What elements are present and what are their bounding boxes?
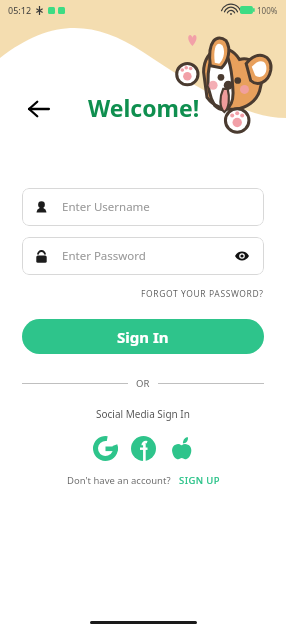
- button[interactable]: Back: [20, 90, 58, 128]
- staticText: 100%: [257, 5, 278, 16]
- button[interactable]: Sign In: [22, 319, 264, 354]
- staticText: FORGOT YOUR PASSWORD?: [141, 288, 264, 300]
- staticText: 05:12: [8, 4, 32, 16]
- staticText: SIGN UP: [179, 474, 220, 487]
- staticText: OR: [136, 377, 150, 390]
- button[interactable]: SIGN UP: [179, 472, 220, 489]
- button[interactable]: Enter Password: [22, 237, 264, 275]
- button[interactable]: Enter Username: [22, 188, 264, 226]
- button[interactable]: Show password: [232, 246, 252, 266]
- button[interactable]: Sign in with Google: [90, 433, 120, 463]
- button[interactable]: FORGOT YOUR PASSWORD?: [141, 286, 264, 302]
- staticText: Social Media Sign In: [96, 407, 190, 421]
- staticText: Enter Password: [62, 248, 146, 264]
- staticText: Enter Username: [62, 199, 150, 215]
- button[interactable]: Sign in with Facebook: [128, 433, 158, 463]
- staticText: Don't have an account?: [67, 474, 171, 487]
- staticText: Welcome!: [88, 92, 200, 123]
- button[interactable]: Sign in with Apple: [166, 433, 196, 463]
- staticText: Sign In: [117, 327, 169, 347]
